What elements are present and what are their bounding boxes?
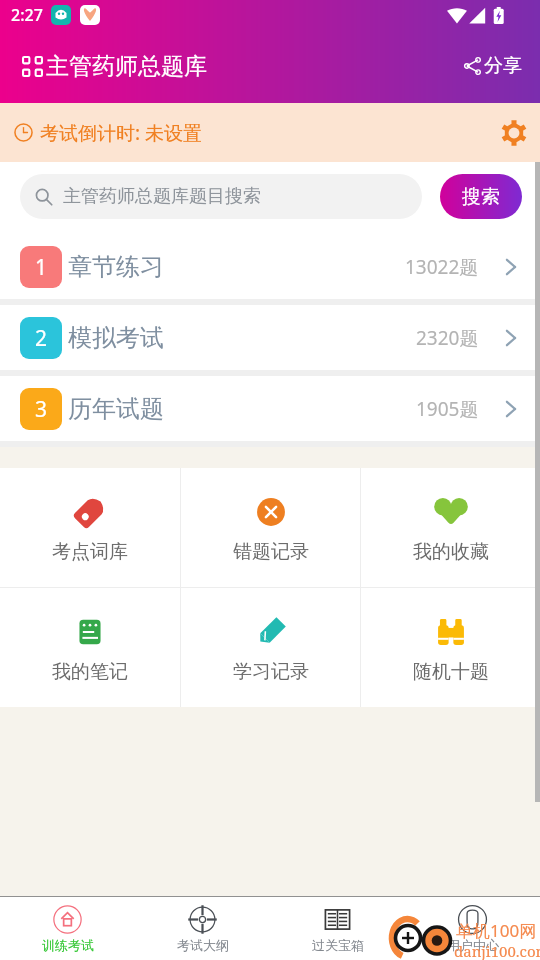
button[interactable]: 训练考试	[0, 897, 135, 960]
staticText: 13022题	[405, 254, 479, 280]
staticText: 我的笔记	[52, 660, 128, 684]
button[interactable]: 错题记录	[181, 468, 360, 587]
button[interactable]: 搜索	[440, 174, 522, 219]
staticText: 考试倒计时: 未设置	[40, 120, 203, 146]
staticText: 过关宝箱	[312, 937, 364, 953]
staticText: 主管药师总题库	[46, 52, 207, 81]
button[interactable]: 分享	[456, 48, 526, 84]
staticText: 2:27	[11, 4, 43, 26]
staticText: 我的收藏	[413, 540, 489, 564]
button[interactable]: 3	[0, 376, 540, 441]
staticText: 考试大纲	[177, 937, 229, 953]
staticText: 2	[35, 324, 48, 353]
button[interactable]: 1	[0, 234, 540, 299]
button[interactable]: 主管药师总题库题目搜索	[20, 174, 422, 219]
staticText: 单机100网	[456, 919, 537, 942]
button[interactable]: 我的收藏	[361, 468, 540, 587]
button[interactable]: 用户中心	[405, 897, 540, 960]
staticText: 模拟考试	[68, 323, 164, 353]
staticText: 历年试题	[68, 394, 164, 424]
button[interactable]: 我的笔记	[0, 588, 180, 707]
staticText: 训练考试	[42, 937, 94, 953]
staticText: 搜索	[462, 185, 500, 209]
staticText: 1905题	[416, 396, 479, 422]
staticText: 主管药师总题库题目搜索	[63, 185, 261, 208]
staticText: danji100.com	[454, 941, 540, 960]
button[interactable]: 随机十题	[361, 588, 540, 707]
staticText: 2320题	[416, 325, 479, 351]
staticText: 错题记录	[233, 540, 309, 564]
staticText: 章节练习	[68, 252, 164, 282]
button[interactable]: Settings	[499, 118, 529, 148]
staticText: 1	[35, 253, 48, 282]
button[interactable]: 学习记录	[181, 588, 360, 707]
button[interactable]: 考点词库	[0, 468, 180, 587]
button[interactable]: 考试大纲	[135, 897, 270, 960]
button[interactable]: 考试倒计时: 未设置	[0, 103, 540, 162]
staticText: 考点词库	[52, 540, 128, 564]
staticText: 学习记录	[233, 660, 309, 684]
button[interactable]: 2	[0, 305, 540, 370]
staticText: 用户中心	[447, 937, 499, 953]
staticText: 分享	[484, 54, 522, 78]
staticText: 随机十题	[413, 660, 489, 684]
button[interactable]: 过关宝箱	[270, 897, 405, 960]
staticText: 3	[35, 395, 48, 424]
